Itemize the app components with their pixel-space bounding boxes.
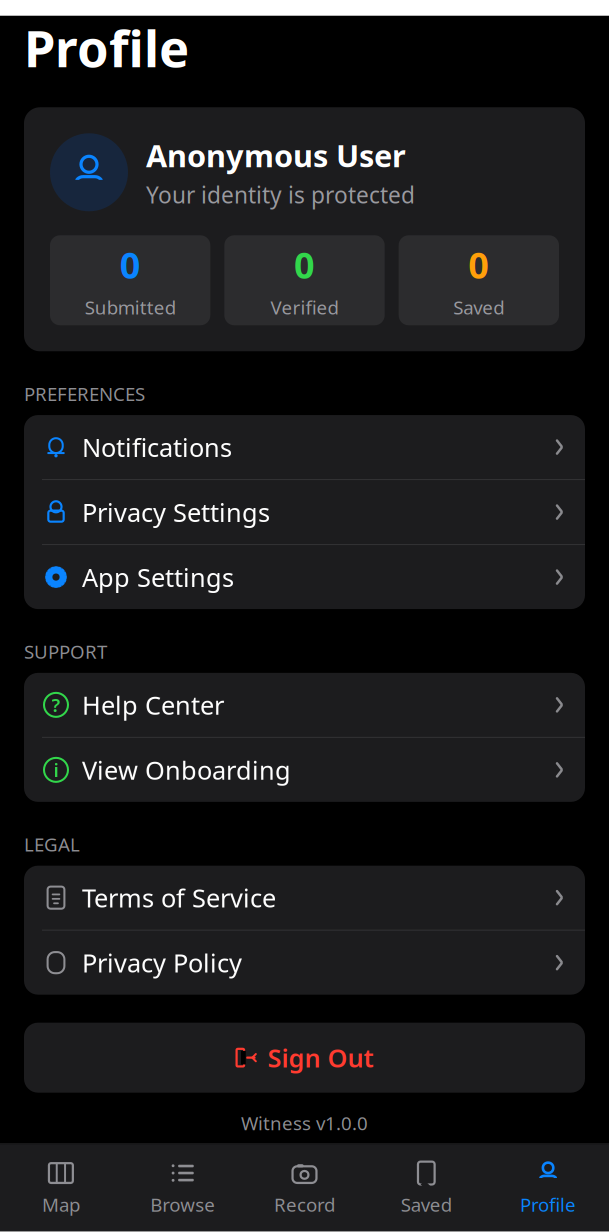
button[interactable]: Sign Out: [24, 1023, 585, 1093]
staticText: i: [53, 757, 58, 782]
staticText: Your identity is protected: [146, 180, 415, 210]
staticText: Terms of Service: [82, 881, 276, 914]
staticText: View Onboarding: [82, 753, 291, 787]
staticText: App Settings: [82, 560, 234, 594]
staticText: LEGAL: [24, 832, 80, 857]
button[interactable]: Saved: [365, 1155, 487, 1221]
staticText: Help Center: [82, 688, 224, 722]
staticText: Anonymous User: [146, 135, 406, 176]
staticText: Witness v1.0.0: [241, 1111, 368, 1135]
button[interactable]: i: [24, 738, 585, 802]
button[interactable]: App Settings: [24, 545, 585, 609]
button[interactable]: Privacy Settings: [24, 480, 585, 545]
staticText: 0: [120, 241, 141, 289]
staticText: Verified: [270, 295, 338, 320]
staticText: Profile: [24, 14, 189, 81]
staticText: Browse: [150, 1192, 215, 1217]
staticText: Privacy Policy: [82, 946, 242, 979]
button[interactable]: Profile: [487, 1155, 609, 1221]
staticText: Saved: [453, 295, 504, 320]
staticText: Notifications: [82, 430, 232, 464]
button[interactable]: ?: [24, 673, 585, 738]
staticText: PREFERENCES: [24, 381, 145, 406]
staticText: Record: [274, 1192, 335, 1217]
staticText: Privacy Settings: [82, 495, 270, 529]
staticText: Saved: [401, 1192, 452, 1217]
staticText: SUPPORT: [24, 639, 107, 664]
staticText: Sign Out: [267, 1041, 373, 1074]
button[interactable]: Record: [244, 1155, 365, 1221]
button[interactable]: Terms of Service: [24, 866, 585, 931]
staticText: 0: [294, 241, 315, 289]
button[interactable]: Map: [0, 1155, 122, 1221]
staticText: Map: [42, 1192, 80, 1217]
staticText: ?: [51, 692, 60, 717]
staticText: 0: [468, 241, 489, 289]
staticText: Submitted: [85, 295, 176, 320]
button[interactable]: Browse: [122, 1155, 244, 1221]
staticText: Profile: [520, 1192, 576, 1217]
button[interactable]: Notifications: [24, 415, 585, 480]
button[interactable]: Privacy Policy: [24, 931, 585, 995]
